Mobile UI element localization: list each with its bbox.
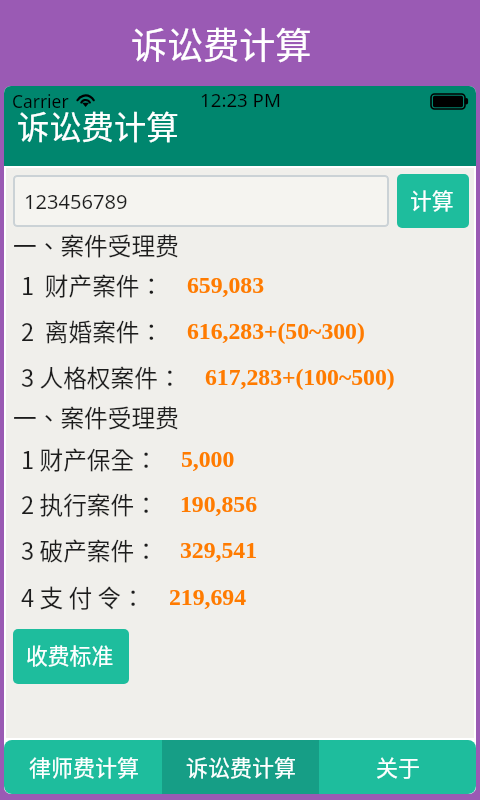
staticText: 1 财产案件： (21, 268, 164, 302)
staticText: 4 支 付 令： (21, 580, 145, 614)
other: Wi-Fi signal (76, 94, 96, 108)
staticText: 诉讼费计算 (17, 102, 179, 149)
staticText: 诉讼费计算 (131, 17, 312, 65)
staticText: 123456789 (24, 188, 128, 215)
button[interactable]: 关于 (319, 740, 476, 794)
button[interactable] (13, 175, 389, 227)
staticText: 617,283+(100~500) (205, 364, 395, 390)
staticText: 616,283+(50~300) (187, 318, 365, 344)
staticText: 律师费计算 (29, 750, 140, 782)
staticText: 219,694 (169, 584, 246, 610)
staticText: 2 执行案件： (21, 487, 158, 521)
staticText: 3 破产案件： (21, 533, 158, 567)
staticText: 收费标准 (26, 639, 114, 671)
staticText: 2 离婚案件： (21, 314, 164, 348)
staticText: 659,083 (187, 272, 264, 298)
button[interactable]: 收费标准 (13, 629, 129, 684)
staticText: 1 财产保全： (21, 442, 158, 476)
staticText: 190,856 (180, 491, 257, 517)
staticText: 关于 (376, 750, 421, 782)
button[interactable]: 律师费计算 (4, 740, 162, 794)
staticText: 3 人格权案件： (21, 360, 182, 394)
button[interactable]: 计算 (397, 174, 469, 228)
staticText: Carrier (12, 89, 69, 113)
staticText: 计算 (410, 184, 454, 216)
staticText: 诉讼费计算 (186, 750, 297, 782)
staticText: 5,000 (181, 446, 235, 472)
button[interactable]: 诉讼费计算 (162, 740, 319, 794)
staticText: 一、案件受理费 (13, 228, 179, 262)
staticText: 一、案件受理费 (13, 400, 179, 434)
staticText: 329,541 (180, 537, 257, 563)
other: Battery full (431, 94, 472, 109)
staticText: 12:23 PM (200, 87, 281, 112)
